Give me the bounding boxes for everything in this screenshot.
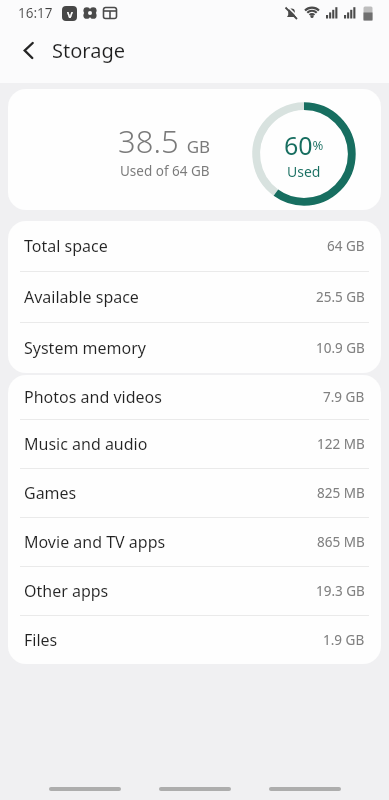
staticText: Used (287, 162, 321, 181)
button[interactable]: Games (8, 469, 381, 517)
staticText: 7.9 GB (323, 388, 365, 406)
staticText: 60% (284, 128, 324, 162)
staticText: Available space (24, 286, 139, 308)
staticText: Music and audio (24, 433, 148, 455)
button[interactable] (159, 787, 231, 791)
button[interactable]: Available space (8, 272, 381, 322)
staticText: Files (24, 629, 58, 651)
button[interactable]: System memory (8, 323, 381, 373)
staticText: 64 GB (327, 237, 365, 255)
staticText: 825 MB (317, 484, 365, 502)
staticText: Games (24, 482, 77, 504)
staticText: 19.3 GB (316, 582, 365, 600)
button[interactable]: Total space (8, 221, 381, 271)
staticText: Movie and TV apps (24, 531, 166, 553)
button[interactable] (49, 787, 121, 791)
button[interactable]: Files (8, 616, 381, 664)
button[interactable] (12, 34, 44, 66)
button[interactable] (269, 787, 341, 791)
staticText: System memory (24, 337, 146, 359)
staticText: 122 MB (317, 435, 365, 453)
staticText: 10.9 GB (316, 339, 365, 357)
button[interactable]: Music and audio (8, 420, 381, 468)
staticText: Used of 64 GB (120, 162, 210, 180)
staticText: Photos and videos (24, 386, 162, 408)
staticText: Other apps (24, 580, 109, 602)
staticText: V (67, 8, 73, 20)
staticText: 1.9 GB (323, 631, 365, 649)
staticText: 865 MB (317, 533, 365, 551)
staticText: 25.5 GB (316, 288, 365, 306)
staticText: 38.5 GB (118, 120, 211, 162)
button[interactable]: Movie and TV apps (8, 518, 381, 566)
staticText: Storage (52, 37, 125, 64)
button[interactable]: Photos and videos (8, 375, 381, 419)
button[interactable]: Other apps (8, 567, 381, 615)
staticText: Total space (24, 235, 108, 257)
staticText: 16:17 (18, 4, 53, 22)
